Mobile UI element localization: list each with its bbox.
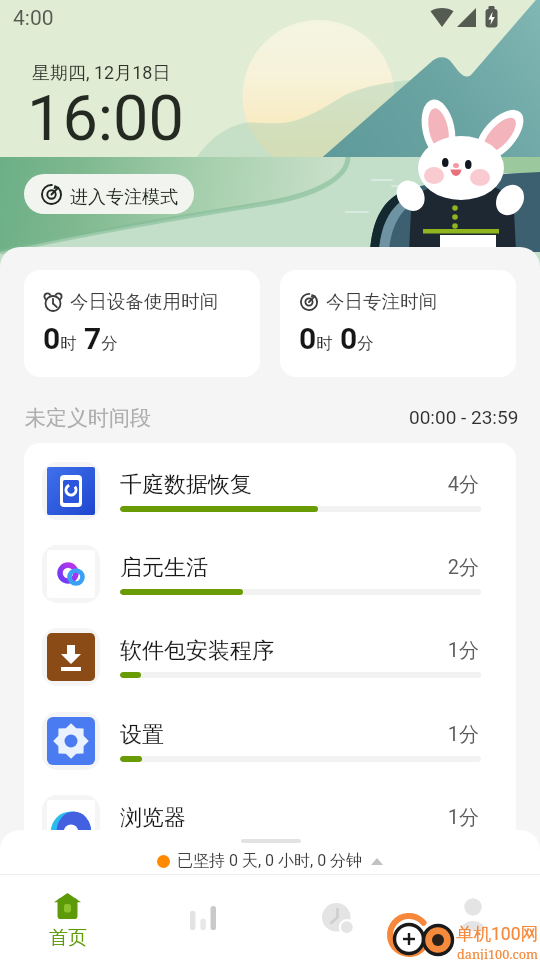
staticText: 进入专注模式	[70, 186, 178, 209]
staticText: 启元生活	[120, 554, 208, 582]
button[interactable]: Home	[0, 875, 135, 960]
button[interactable]: 千庭数据恢复	[24, 450, 516, 533]
staticText: danji100.com	[457, 945, 538, 960]
staticText: 2分	[24, 555, 479, 580]
button[interactable]: 进入专注模式	[24, 174, 194, 214]
button[interactable]: Statistics	[135, 875, 270, 960]
staticText: 4:00	[13, 6, 54, 31]
button[interactable]: 设置	[24, 700, 516, 783]
button[interactable]: Timer	[270, 875, 405, 960]
staticText: 7分	[84, 321, 118, 356]
staticText: 千庭数据恢复	[120, 471, 252, 499]
button[interactable]: 启元生活	[24, 533, 516, 616]
staticText: 未定义时间段	[25, 405, 151, 431]
button[interactable]: 今日设备使用时间	[24, 270, 260, 377]
staticText: 16:00	[27, 82, 184, 156]
button[interactable]: 已坚持 0 天, 0 小时, 0 分钟	[0, 848, 540, 874]
staticText: 已坚持 0 天, 0 小时, 0 分钟	[177, 851, 363, 871]
button[interactable]: 软件包安装程序	[24, 616, 516, 699]
staticText: 单机100网	[456, 923, 539, 945]
staticText: 4分	[24, 472, 479, 497]
button[interactable]: Profile	[405, 875, 540, 960]
staticText: 今日设备使用时间	[70, 290, 218, 313]
staticText: 浏览器	[120, 804, 186, 832]
staticText: 00:00 - 23:59	[409, 406, 519, 428]
staticText: 1分	[24, 722, 479, 747]
button[interactable]: 今日专注时间	[280, 270, 516, 377]
staticText: 0分	[340, 321, 374, 356]
staticText: 软件包安装程序	[120, 637, 274, 665]
staticText: 设置	[120, 721, 164, 749]
staticText: 0时	[299, 321, 333, 356]
staticText: 0时	[43, 321, 77, 356]
staticText: 今日专注时间	[326, 290, 437, 313]
staticText: 首页	[49, 926, 87, 950]
staticText: 1分	[24, 638, 479, 663]
staticText: 星期四, 12月18日	[32, 62, 171, 85]
button[interactable]: 浏览器	[24, 783, 516, 863]
staticText: 1分	[24, 805, 479, 830]
